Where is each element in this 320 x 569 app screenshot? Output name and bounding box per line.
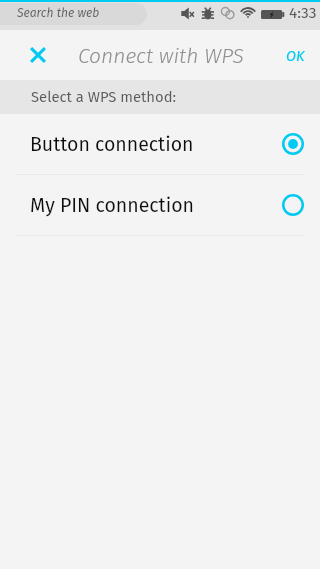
staticText: My PIN connection <box>30 194 194 217</box>
button[interactable]: My PIN connection <box>0 175 320 235</box>
staticText: Select a WPS method: <box>31 88 177 106</box>
staticText: Search the web <box>17 6 100 21</box>
button[interactable]: OK <box>272 30 320 80</box>
button[interactable]: Button connection <box>0 114 320 174</box>
staticText: Connect with WPS <box>78 43 244 68</box>
staticText: OK <box>286 47 305 64</box>
staticText: 4:33 <box>289 4 317 23</box>
button[interactable]: Close <box>17 30 57 80</box>
button[interactable] <box>0 3 147 25</box>
staticText: Button connection <box>30 133 194 156</box>
